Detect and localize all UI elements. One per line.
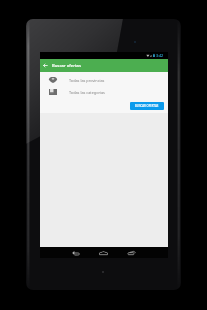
button[interactable]: Todas las provincias (40, 74, 168, 86)
button[interactable]: Recent apps (124, 249, 138, 257)
staticText: Todas las provincias (69, 78, 105, 83)
button[interactable]: BUSCAR OFERTAS (130, 102, 164, 110)
button[interactable]: Back (69, 249, 83, 257)
staticText: BUSCAR OFERTAS (135, 104, 159, 108)
button[interactable]: Home (96, 249, 110, 257)
staticText: Buscar ofertas (52, 63, 81, 69)
button[interactable]: Todas las categorias (40, 86, 168, 98)
staticText: Todas las categorias (69, 90, 105, 95)
button[interactable]: Back (43, 63, 48, 68)
staticText: 3:42 (156, 53, 164, 58)
